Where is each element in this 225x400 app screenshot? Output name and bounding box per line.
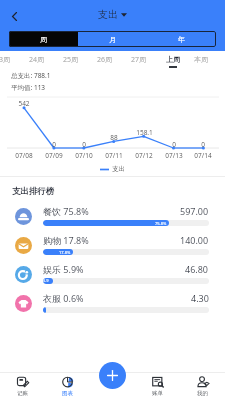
staticText: 餐饮 75.8% <box>43 205 180 217</box>
staticText: 我的 <box>197 390 208 397</box>
button[interactable]: 周 <box>9 31 78 47</box>
button[interactable]: 月 <box>78 31 147 47</box>
staticText: 158.1 <box>136 128 153 137</box>
button[interactable]: 上周 <box>156 55 190 74</box>
staticText: 记账 <box>17 390 28 397</box>
staticText: 5.9% <box>43 278 51 284</box>
staticText: 07/11 <box>105 151 123 160</box>
button[interactable]: 图表 <box>45 372 90 400</box>
button[interactable]: 记账 <box>0 372 45 400</box>
staticText: 23周 <box>0 55 11 65</box>
staticText: 0 <box>82 140 86 149</box>
staticText: 娱乐 5.9% <box>43 263 185 275</box>
button[interactable]: 23周 <box>0 55 20 74</box>
staticText: 07/14 <box>194 151 212 160</box>
staticText: 年 <box>178 35 185 44</box>
staticText: 07/13 <box>165 151 183 160</box>
staticText: 4.30 <box>191 292 209 304</box>
staticText: 24周 <box>29 55 45 65</box>
button[interactable]: 24周 <box>20 55 54 74</box>
button[interactable]: 衣服 0.6% <box>0 289 225 318</box>
staticText: 88 <box>110 133 118 142</box>
staticText: 衣服 0.6% <box>43 292 191 304</box>
staticText: 26周 <box>97 55 113 65</box>
staticText: 本周 <box>194 55 208 64</box>
staticText: 总支出: 788.1 <box>11 71 51 80</box>
staticText: 0 <box>172 140 176 149</box>
staticText: 75.8% <box>155 221 167 226</box>
staticText: 0 <box>201 140 205 149</box>
staticText: 购物 17.8% <box>43 234 180 246</box>
button[interactable]: 购物 17.8% <box>0 231 225 260</box>
staticText: 周 <box>40 35 47 44</box>
staticText: 月 <box>109 35 116 44</box>
staticText: 平均值: 113 <box>11 83 46 92</box>
button[interactable]: 支出 <box>94 6 131 23</box>
button[interactable]: 26周 <box>88 55 122 74</box>
staticText: 图表 <box>62 390 73 397</box>
button[interactable]: 娱乐 5.9% <box>0 260 225 289</box>
staticText: 07/10 <box>75 151 93 160</box>
button[interactable]: 记一笔 <box>99 362 126 390</box>
staticText: 0 <box>52 140 56 149</box>
staticText: 27周 <box>131 55 147 65</box>
staticText: 17.8% <box>59 250 71 255</box>
staticText: 支出排行榜 <box>12 186 55 197</box>
staticText: 07/09 <box>45 151 63 160</box>
staticText: 597.00 <box>180 205 209 217</box>
staticText: 支出 <box>98 8 118 21</box>
staticText: 上周 <box>166 55 180 64</box>
staticText: 140.00 <box>180 234 209 246</box>
button[interactable]: 账单 <box>135 372 180 400</box>
button[interactable]: 27周 <box>122 55 156 74</box>
staticText: 账单 <box>152 390 163 397</box>
button[interactable]: 我的 <box>180 372 225 400</box>
staticText: 25周 <box>63 55 79 65</box>
staticText: 07/12 <box>135 151 153 160</box>
button[interactable]: Back <box>6 8 22 24</box>
button[interactable]: 年 <box>147 31 216 47</box>
other: 记一笔 <box>99 362 126 389</box>
button[interactable]: 25周 <box>54 55 88 74</box>
button[interactable]: 本周 <box>190 55 211 74</box>
staticText: 542 <box>18 99 30 108</box>
staticText: 支出 <box>112 165 125 173</box>
staticText: 07/08 <box>15 151 33 160</box>
button[interactable]: 餐饮 75.8% <box>0 202 225 231</box>
staticText: 46.80 <box>185 263 209 275</box>
